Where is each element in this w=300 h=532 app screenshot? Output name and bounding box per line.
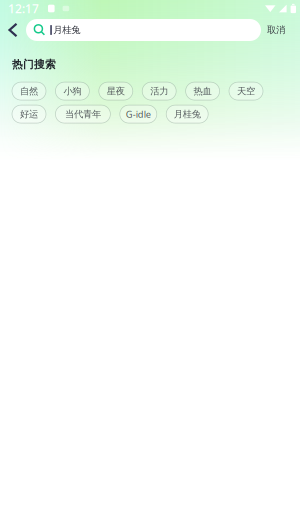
button[interactable]: 自然 xyxy=(12,82,46,100)
button[interactable]: 星夜 xyxy=(99,82,133,100)
staticText: 星夜 xyxy=(107,85,125,97)
button[interactable]: 活力 xyxy=(142,82,176,100)
staticText: 月桂兔 xyxy=(53,24,80,36)
button[interactable]: Back xyxy=(0,17,26,43)
staticText: 12:17 xyxy=(8,0,39,16)
button[interactable]: 好运 xyxy=(12,105,46,123)
button[interactable]: G-idle xyxy=(120,105,157,123)
staticText: 热门搜索 xyxy=(12,58,56,71)
staticText: 天空 xyxy=(237,85,255,97)
staticText: 热血 xyxy=(194,85,212,97)
button[interactable]: 热血 xyxy=(186,82,220,100)
button[interactable]: 取消 xyxy=(261,17,291,43)
staticText: G-idle xyxy=(126,108,151,120)
button[interactable]: 小狗 xyxy=(55,82,89,100)
button[interactable]: 月桂兔 xyxy=(166,105,208,123)
staticText: 自然 xyxy=(20,85,38,97)
staticText: 月桂兔 xyxy=(174,108,201,120)
staticText: 取消 xyxy=(267,24,285,36)
staticText: 好运 xyxy=(20,108,38,120)
button[interactable]: 当代青年 xyxy=(55,105,110,123)
staticText: 活力 xyxy=(150,85,168,97)
staticText: 小狗 xyxy=(63,85,81,97)
staticText: 当代青年 xyxy=(65,108,101,120)
button[interactable]: 天空 xyxy=(229,82,263,100)
